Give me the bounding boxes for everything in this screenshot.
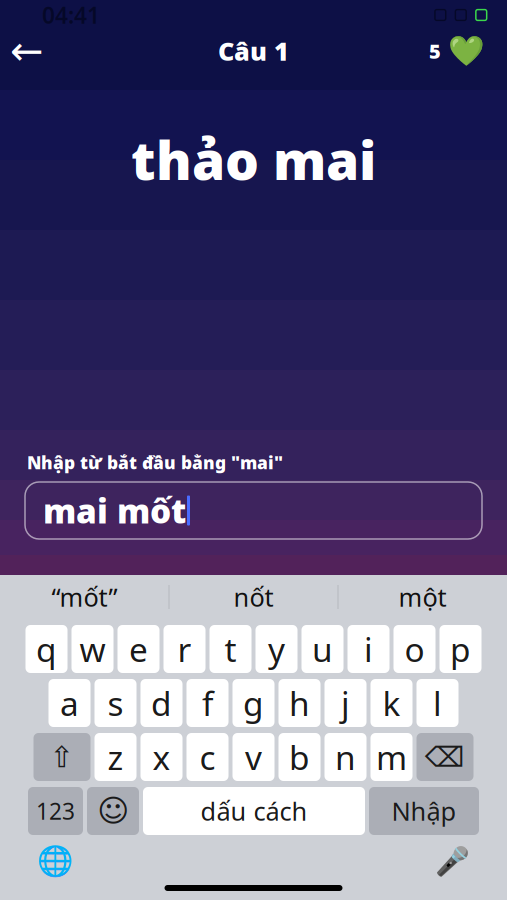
button[interactable]: Emoji xyxy=(87,787,139,835)
button[interactable]: v xyxy=(232,733,274,781)
button[interactable]: q xyxy=(25,625,67,673)
staticText: m xyxy=(376,735,407,779)
button[interactable]: w xyxy=(71,625,113,673)
button[interactable]: g xyxy=(232,679,274,727)
button[interactable]: Return xyxy=(369,787,479,835)
staticText: Nhập từ bắt đầu bằng "mai" xyxy=(27,451,283,474)
staticText: a xyxy=(60,681,79,725)
button[interactable]: nốt xyxy=(169,575,337,619)
staticText: z xyxy=(107,735,123,779)
staticText: g xyxy=(243,681,264,725)
staticText: mai mốt xyxy=(43,488,186,533)
staticText: l xyxy=(433,681,442,725)
staticText: y xyxy=(268,627,285,671)
staticText: i xyxy=(364,627,373,671)
staticText: 🌐 xyxy=(36,844,73,878)
button[interactable]: một xyxy=(338,575,506,619)
staticText: p xyxy=(450,627,471,671)
staticText: 5 xyxy=(429,38,441,64)
staticText: f xyxy=(202,681,213,725)
button[interactable]: Change keyboard xyxy=(30,839,80,883)
staticText: x xyxy=(152,735,170,779)
staticText: 04:41 xyxy=(42,0,100,30)
staticText: b xyxy=(289,735,310,779)
staticText: o xyxy=(404,627,424,671)
button[interactable]: m xyxy=(370,733,412,781)
staticText: e xyxy=(129,627,148,671)
staticText: ⇧ xyxy=(49,740,74,774)
staticText: w xyxy=(79,627,105,671)
button[interactable]: dấu cách xyxy=(143,787,365,835)
button[interactable]: Delete xyxy=(416,733,473,781)
button[interactable]: Back xyxy=(0,30,54,72)
button[interactable]: j xyxy=(324,679,366,727)
button[interactable]: Lives remaining: 5 xyxy=(429,30,507,72)
button[interactable]: Numbers xyxy=(28,787,83,835)
button[interactable]: b xyxy=(278,733,320,781)
staticText: h xyxy=(289,681,310,725)
button[interactable]: a xyxy=(48,679,90,727)
staticText: ⌫ xyxy=(425,741,465,773)
button[interactable]: p xyxy=(439,625,481,673)
staticText: k xyxy=(382,681,400,725)
staticText: q xyxy=(36,627,57,671)
staticText: c xyxy=(199,735,215,779)
staticText: 💚 xyxy=(448,34,485,68)
button[interactable]: y xyxy=(255,625,297,673)
button[interactable]: h xyxy=(278,679,320,727)
staticText: ☺ xyxy=(97,794,129,828)
staticText: Câu 1 xyxy=(218,34,289,68)
staticText: 🎤 xyxy=(434,845,469,877)
staticText: ← xyxy=(10,28,44,74)
staticText: n xyxy=(335,735,356,779)
staticText: một xyxy=(398,580,446,614)
button[interactable]: Dictation xyxy=(427,839,477,883)
button[interactable]: f xyxy=(186,679,228,727)
staticText: thảo mai xyxy=(131,124,376,195)
button[interactable]: n xyxy=(324,733,366,781)
staticText: “mốt” xyxy=(51,580,117,614)
button[interactable]: Shift xyxy=(33,733,90,781)
button[interactable]: “mốt” xyxy=(0,575,168,619)
staticText: s xyxy=(107,681,123,725)
button[interactable]: r xyxy=(163,625,205,673)
staticText: u xyxy=(312,627,333,671)
button[interactable]: o xyxy=(393,625,435,673)
button[interactable]: u xyxy=(301,625,343,673)
button[interactable]: c xyxy=(186,733,228,781)
staticText: 123 xyxy=(36,796,75,826)
staticText: Nhập xyxy=(391,794,456,828)
staticText: t xyxy=(224,627,236,671)
staticText: nốt xyxy=(233,580,273,614)
staticText: j xyxy=(341,681,350,725)
button[interactable]: l xyxy=(416,679,458,727)
button[interactable]: i xyxy=(347,625,389,673)
button[interactable]: d xyxy=(140,679,182,727)
button[interactable]: z xyxy=(94,733,136,781)
staticText: v xyxy=(245,735,262,779)
button[interactable]: s xyxy=(94,679,136,727)
button[interactable]: t xyxy=(209,625,251,673)
staticText: dấu cách xyxy=(200,794,307,828)
staticText: d xyxy=(151,681,172,725)
button[interactable]: k xyxy=(370,679,412,727)
button[interactable]: mai mốt xyxy=(25,482,482,539)
button[interactable]: x xyxy=(140,733,182,781)
staticText: r xyxy=(177,627,191,671)
button[interactable]: e xyxy=(117,625,159,673)
